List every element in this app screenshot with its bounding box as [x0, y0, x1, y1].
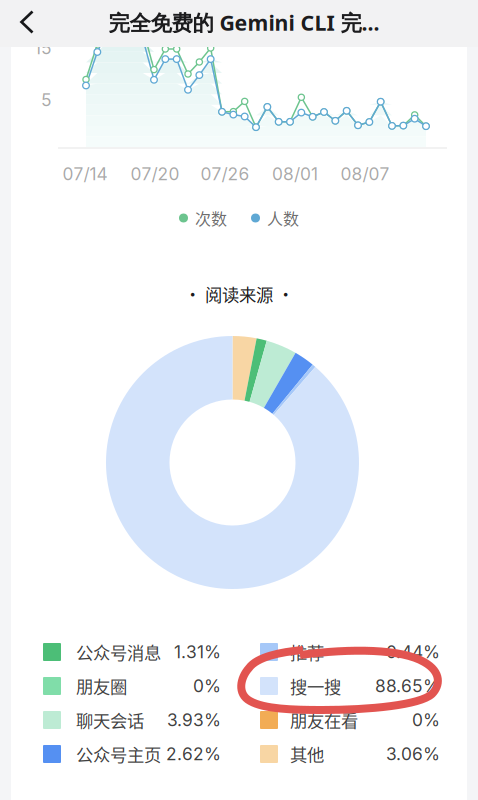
button[interactable]: 其他	[260, 737, 440, 771]
staticText: 08/07	[340, 163, 389, 184]
staticText: 2.62%	[166, 743, 221, 764]
staticText: 完全免费的 Gemini CLI 完...	[108, 8, 379, 37]
button[interactable]: 推荐	[260, 635, 440, 669]
staticText: 推荐	[290, 639, 324, 665]
staticText: 人数	[267, 206, 299, 230]
staticText: 搜一搜	[290, 673, 341, 699]
button[interactable]: 朋友在看	[260, 703, 440, 737]
staticText: 07/26	[200, 163, 249, 184]
button[interactable]: 搜一搜	[260, 669, 440, 703]
staticText: 08/01	[272, 163, 318, 184]
staticText: 公众号消息	[76, 639, 161, 665]
staticText: 88.65%	[375, 675, 440, 696]
staticText: 朋友圈	[76, 673, 127, 699]
staticText: 0%	[193, 675, 221, 696]
staticText: 聊天会话	[76, 707, 144, 733]
staticText: 0.44%	[386, 641, 440, 662]
staticText: 07/20	[130, 163, 179, 184]
staticText: 公众号主页	[76, 741, 161, 767]
staticText: 3.06%	[386, 743, 440, 764]
staticText: 15	[34, 37, 52, 58]
staticText: 5	[41, 89, 52, 110]
staticText: · 阅读来源 ·	[184, 281, 294, 307]
button[interactable]: 公众号消息	[43, 635, 221, 669]
staticText: 次数	[195, 206, 227, 230]
button[interactable]: 朋友圈	[43, 669, 221, 703]
staticText: 其他	[290, 741, 324, 767]
button[interactable]: Back	[0, 0, 54, 44]
staticText: 1.31%	[174, 641, 221, 662]
button[interactable]: 公众号主页	[43, 737, 221, 771]
staticText: 0%	[412, 709, 440, 730]
staticText: 3.93%	[167, 709, 221, 730]
staticText: 朋友在看	[290, 707, 358, 733]
button[interactable]: 聊天会话	[43, 703, 221, 737]
staticText: 07/14	[62, 163, 107, 184]
